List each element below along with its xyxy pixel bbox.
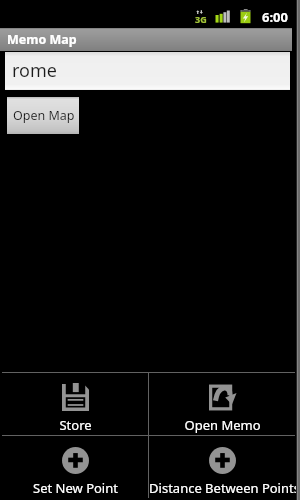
button[interactable]: Open Map — [7, 97, 79, 134]
staticText: Open Memo — [184, 416, 261, 434]
staticText: Open Map — [13, 107, 75, 124]
staticText: 6:00 — [262, 8, 288, 26]
button[interactable]: Open Memo — [149, 373, 295, 435]
staticText: Memo Map — [7, 31, 77, 48]
staticText: 3G — [195, 13, 207, 25]
staticText: Distance Between Points — [149, 479, 295, 497]
staticText: Store — [59, 416, 92, 434]
staticText: Set New Point — [33, 479, 118, 497]
staticText: rome — [12, 58, 57, 83]
button[interactable]: Distance Between Points — [149, 436, 295, 498]
button[interactable]: Store — [2, 373, 148, 435]
button[interactable]: rome — [5, 52, 290, 90]
button[interactable]: Set New Point — [2, 436, 148, 498]
